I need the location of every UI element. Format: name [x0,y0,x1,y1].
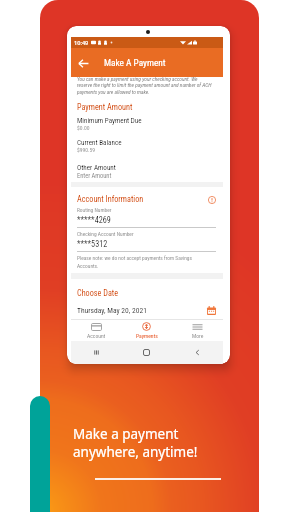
button[interactable]: Other Amount [77,163,216,180]
button[interactable]: Current Balance [77,138,216,154]
staticText: 10:49 [74,39,89,47]
other: Pick date [206,305,216,315]
staticText: Account Information [77,194,144,204]
staticText: anywhere, anytime! [73,443,198,461]
staticText: Other Amount [77,163,116,171]
button[interactable]: Thursday, May 20, 2021 [77,305,216,315]
button[interactable]: Checking Account Number [77,231,216,252]
staticText: Payments [136,333,158,340]
staticText: ****5312 [77,239,108,249]
staticText: Payment Amount [77,102,133,112]
staticText: You can make a payment using your checki… [77,76,212,96]
staticText: $990.59 [77,147,96,154]
staticText: Please note: we do not accept payments f… [77,255,195,269]
button[interactable]: Back [172,341,223,364]
staticText: More [192,333,204,340]
button[interactable]: Home [121,341,172,364]
button[interactable]: Recent apps [71,341,121,364]
staticText: Enter Amount [77,172,112,180]
staticText: Choose Date [77,288,119,298]
staticText: Routing Number [77,207,112,213]
staticText: $0.00 [77,125,90,132]
button[interactable]: More [172,320,223,342]
staticText: Minimum Payment Due [77,116,142,124]
staticText: Thursday, May 20, 2021 [77,306,147,315]
staticText: *****4269 [77,215,111,225]
staticText: Account [87,333,106,340]
staticText: Current Balance [77,138,122,146]
button[interactable]: Minimum Payment Due [77,116,216,132]
staticText: Make A Payment [104,57,166,68]
staticText: Make a payment [73,425,179,443]
button[interactable]: Account information help [207,195,216,204]
button[interactable]: Routing Number [77,207,216,228]
button[interactable]: Payments [121,320,172,342]
button[interactable]: Account [71,320,121,342]
staticText: Checking Account Number [77,231,134,237]
button[interactable]: Back [74,54,92,72]
